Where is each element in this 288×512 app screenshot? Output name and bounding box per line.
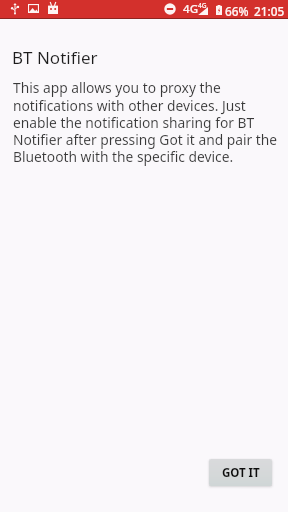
staticText: 4G (183, 1, 199, 17)
staticText: 66% (225, 3, 249, 19)
other: Battery charging (216, 5, 222, 15)
other: Screenshot captured (28, 4, 39, 13)
other: Mobile signal strength (198, 7, 208, 15)
staticText: BT Notifier (12, 46, 98, 69)
button[interactable]: GOT IT (209, 459, 272, 486)
staticText: 4G (198, 1, 207, 10)
staticText: 21:05 (254, 3, 285, 19)
other: Do not disturb (164, 3, 176, 15)
other: Developer mode (48, 2, 58, 14)
staticText: GOT IT (222, 465, 260, 481)
other: USB connected (11, 3, 19, 15)
staticText: This app allows you to proxy the notific… (13, 78, 281, 166)
